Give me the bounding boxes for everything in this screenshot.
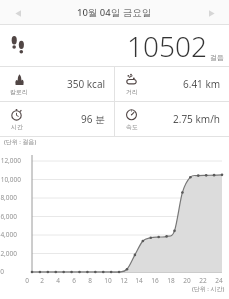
staticText: 10월 04일 금요일	[77, 6, 152, 19]
staticText: 350 kcal	[67, 77, 106, 91]
staticText: 4	[56, 276, 60, 285]
staticText: 거리	[126, 88, 138, 96]
staticText: (단위 : 시간)	[192, 285, 225, 293]
staticText: 14	[135, 276, 143, 285]
staticText: 96 분	[81, 112, 106, 126]
staticText: 24	[215, 276, 223, 285]
staticText: 4,000	[0, 230, 17, 239]
staticText: 시간	[11, 123, 23, 131]
staticText: 22	[199, 276, 207, 285]
button[interactable]: 칼로리	[0, 67, 114, 101]
button[interactable]: Previous day	[9, 4, 27, 22]
staticText: 6.41 km	[183, 77, 221, 91]
staticText: 10	[104, 276, 112, 285]
staticText: 10,000	[0, 175, 21, 184]
staticText: 12,000	[0, 156, 21, 165]
staticText: 10502	[127, 27, 207, 65]
staticText: 2	[40, 276, 44, 285]
staticText: 16	[151, 276, 159, 285]
button[interactable]: Next day	[202, 4, 220, 22]
staticText: 걸음	[210, 53, 224, 62]
staticText: 2,000	[0, 249, 17, 258]
staticText: 12	[120, 276, 128, 285]
staticText: 6	[72, 276, 76, 285]
staticText: 2.75 km/h	[173, 112, 221, 126]
button[interactable]: 거리	[115, 67, 229, 101]
staticText: 8,000	[0, 193, 17, 202]
staticText: 속도	[126, 123, 138, 131]
staticText: 20	[183, 276, 191, 285]
staticText: 18	[167, 276, 175, 285]
button[interactable]: 속도	[115, 102, 229, 136]
staticText: 0	[0, 267, 4, 276]
staticText: 6,000	[0, 212, 17, 221]
button[interactable]: 시간	[0, 102, 114, 136]
staticText: 8	[88, 276, 92, 285]
staticText: (단위 : 걸음)	[4, 138, 37, 146]
staticText: 칼로리	[10, 88, 28, 96]
staticText: 0	[25, 276, 29, 285]
button[interactable]: 10502	[0, 25, 229, 66]
